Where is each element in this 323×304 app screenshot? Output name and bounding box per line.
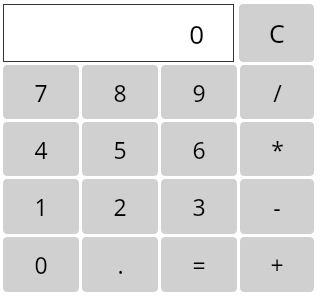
button[interactable]: 4	[3, 122, 79, 176]
staticText: *	[271, 134, 284, 165]
staticText: 6	[192, 134, 206, 165]
button[interactable]: C	[239, 4, 314, 62]
staticText: -	[273, 191, 281, 222]
staticText: /	[273, 77, 282, 108]
button[interactable]: *	[240, 122, 314, 176]
staticText: 1	[34, 191, 48, 222]
staticText: .	[117, 249, 124, 280]
button[interactable]: =	[161, 237, 237, 292]
staticText: 8	[113, 77, 127, 108]
staticText: C	[269, 16, 285, 50]
staticText: 0	[189, 16, 204, 51]
staticText: =	[192, 249, 206, 280]
button[interactable]: 0	[3, 237, 79, 292]
button[interactable]: -	[240, 179, 314, 234]
staticText: 2	[113, 191, 127, 222]
button[interactable]: .	[82, 237, 158, 292]
button[interactable]: 0	[3, 4, 234, 62]
staticText: +	[270, 249, 284, 280]
button[interactable]: 6	[161, 122, 237, 176]
staticText: 5	[113, 134, 127, 165]
staticText: 7	[34, 77, 48, 108]
button[interactable]: /	[240, 65, 314, 119]
staticText: 0	[34, 249, 48, 280]
button[interactable]: 2	[82, 179, 158, 234]
button[interactable]: 3	[161, 179, 237, 234]
button[interactable]: +	[240, 237, 314, 292]
button[interactable]: 7	[3, 65, 79, 119]
button[interactable]: 8	[82, 65, 158, 119]
staticText: 9	[192, 77, 206, 108]
staticText: 4	[34, 134, 48, 165]
button[interactable]: 5	[82, 122, 158, 176]
staticText: 3	[192, 191, 206, 222]
button[interactable]: 1	[3, 179, 79, 234]
button[interactable]: 9	[161, 65, 237, 119]
